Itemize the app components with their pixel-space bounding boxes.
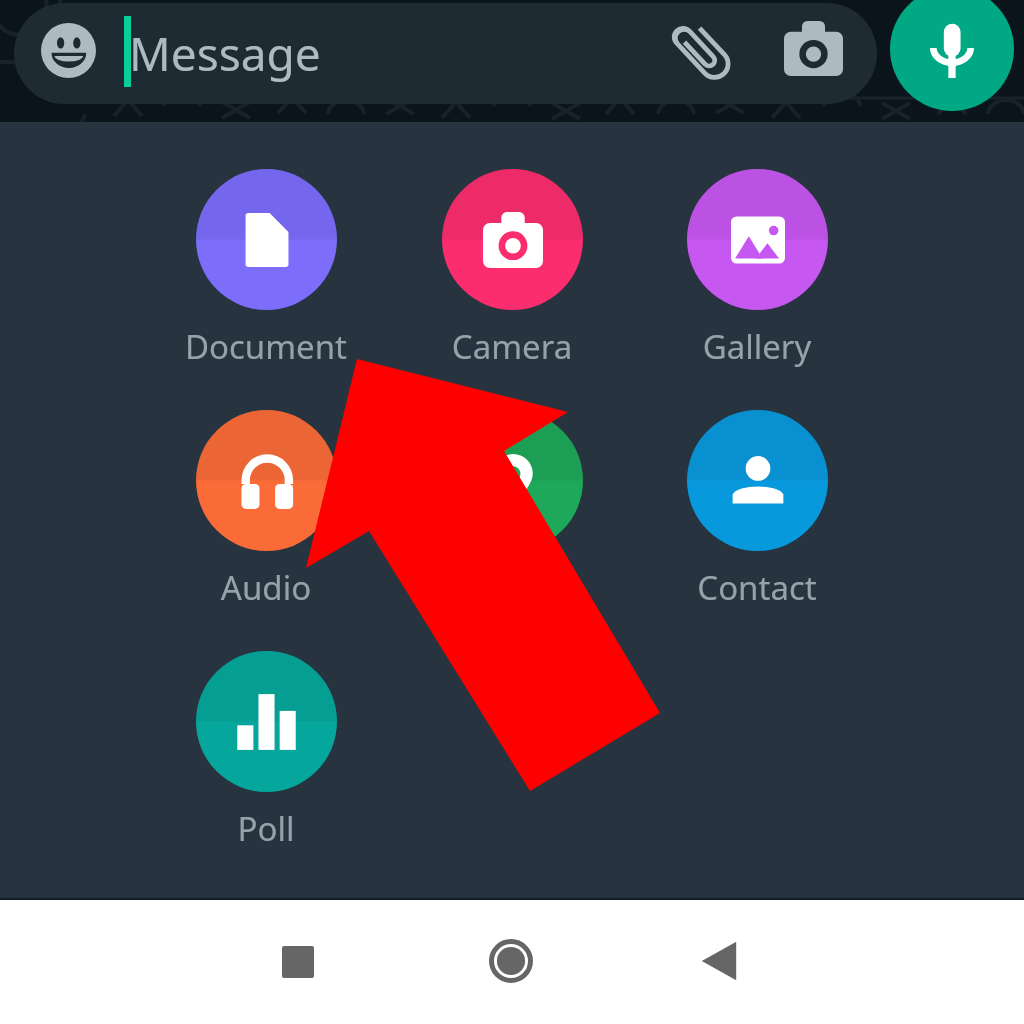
staticText: Document — [176, 324, 356, 369]
button[interactable]: Emoji — [41, 23, 96, 78]
staticText: Gallery — [667, 324, 847, 369]
button[interactable]: Home — [471, 921, 551, 1001]
button[interactable]: Camera — [422, 169, 602, 384]
button[interactable]: Gallery — [667, 169, 847, 384]
staticText: Poll — [176, 806, 356, 851]
button[interactable]: Poll — [176, 651, 356, 866]
staticText: Location — [422, 565, 602, 610]
button[interactable]: Attach — [667, 22, 735, 90]
button[interactable]: Document — [176, 169, 356, 384]
button[interactable]: Recent apps — [258, 922, 338, 1002]
button[interactable]: Location — [422, 410, 602, 625]
button[interactable]: Record voice message — [890, 0, 1014, 111]
button[interactable]: Back — [681, 921, 761, 1001]
staticText: Contact — [667, 565, 847, 610]
staticText: Camera — [422, 324, 602, 369]
staticText: Message — [129, 22, 321, 85]
button[interactable]: Audio — [176, 410, 356, 625]
staticText: Audio — [176, 565, 356, 610]
button[interactable]: Contact — [667, 410, 847, 625]
button[interactable]: Camera — [784, 19, 843, 78]
button[interactable]: Emoji — [14, 3, 877, 104]
